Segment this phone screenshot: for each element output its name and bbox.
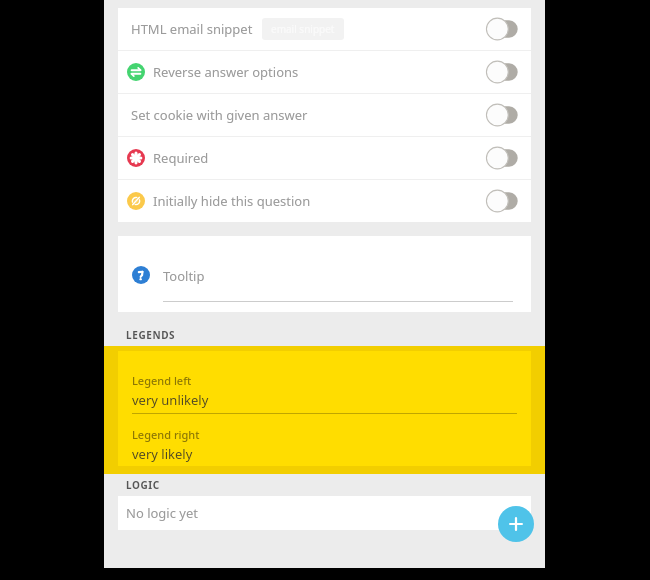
staticText: HTML email snippet [131, 20, 253, 38]
button[interactable]: Legend right [132, 427, 517, 466]
staticText: No logic yet [126, 504, 198, 522]
staticText: Legend right [132, 427, 200, 442]
staticText: Legend left [132, 373, 192, 388]
staticText: very unlikely [132, 391, 209, 409]
staticText: Set cookie with given answer [131, 106, 308, 124]
button[interactable]: Initially hide this question [118, 180, 531, 222]
staticText: Initially hide this question [153, 192, 311, 210]
button[interactable]: HTML email snippet [118, 8, 531, 50]
button[interactable]: Reverse answer options [118, 51, 531, 93]
button[interactable]: Toggle [482, 60, 520, 84]
button[interactable]: Set cookie with given answer [118, 94, 531, 136]
button[interactable]: Required [118, 137, 531, 179]
staticText: very likely [132, 445, 193, 463]
staticText: LOGIC [126, 478, 160, 492]
button[interactable]: Legend left [132, 373, 517, 414]
button[interactable]: Toggle [482, 103, 520, 127]
staticText: Required [153, 149, 209, 167]
button[interactable]: No logic yet [118, 496, 531, 530]
staticText: LEGENDS [126, 328, 176, 342]
button[interactable]: Add logic [498, 506, 534, 542]
button[interactable]: Toggle [482, 189, 520, 213]
button[interactable]: Toggle [482, 17, 520, 41]
staticText: Tooltip [163, 267, 205, 285]
staticText: Reverse answer options [153, 63, 299, 81]
button[interactable]: Toggle [482, 146, 520, 170]
